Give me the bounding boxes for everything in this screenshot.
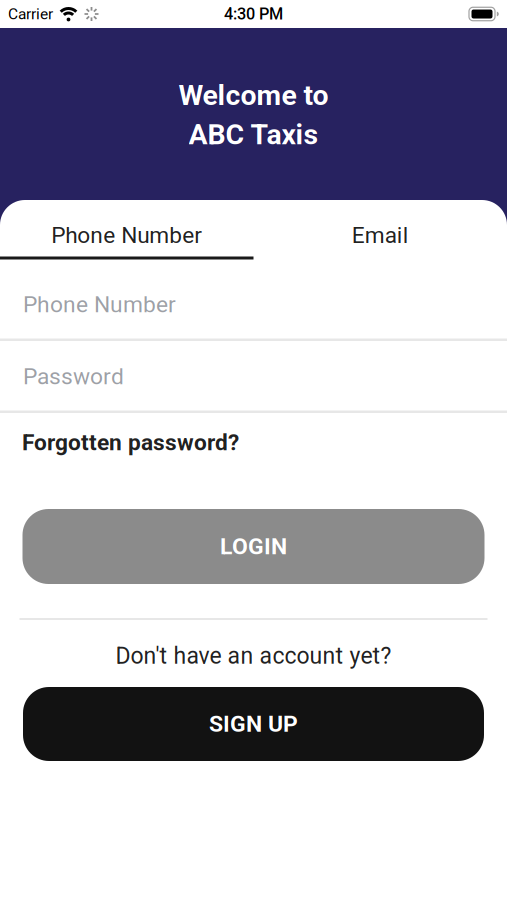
staticText: Password	[23, 363, 124, 390]
button[interactable]: LOGIN	[22, 509, 484, 584]
button[interactable]: Password	[0, 341, 507, 413]
staticText: LOGIN	[220, 533, 287, 560]
button[interactable]: Email	[253, 214, 507, 256]
staticText: Phone Number	[51, 222, 202, 249]
button[interactable]: Phone Number	[0, 259, 507, 341]
button[interactable]: SIGN UP	[23, 687, 484, 761]
staticText: Don't have an account yet?	[115, 642, 391, 669]
staticText: Carrier	[8, 5, 53, 23]
button[interactable]: Phone Number	[0, 214, 253, 256]
staticText: ABC Taxis	[188, 118, 318, 151]
staticText: SIGN UP	[209, 711, 298, 737]
staticText: 4:30 PM	[224, 4, 283, 24]
staticText: Email	[352, 222, 409, 249]
staticText: Welcome to	[178, 79, 328, 112]
staticText: Forgotten password?	[22, 429, 239, 456]
staticText: Phone Number	[23, 291, 176, 318]
button[interactable]: Forgotten password?	[0, 413, 507, 462]
